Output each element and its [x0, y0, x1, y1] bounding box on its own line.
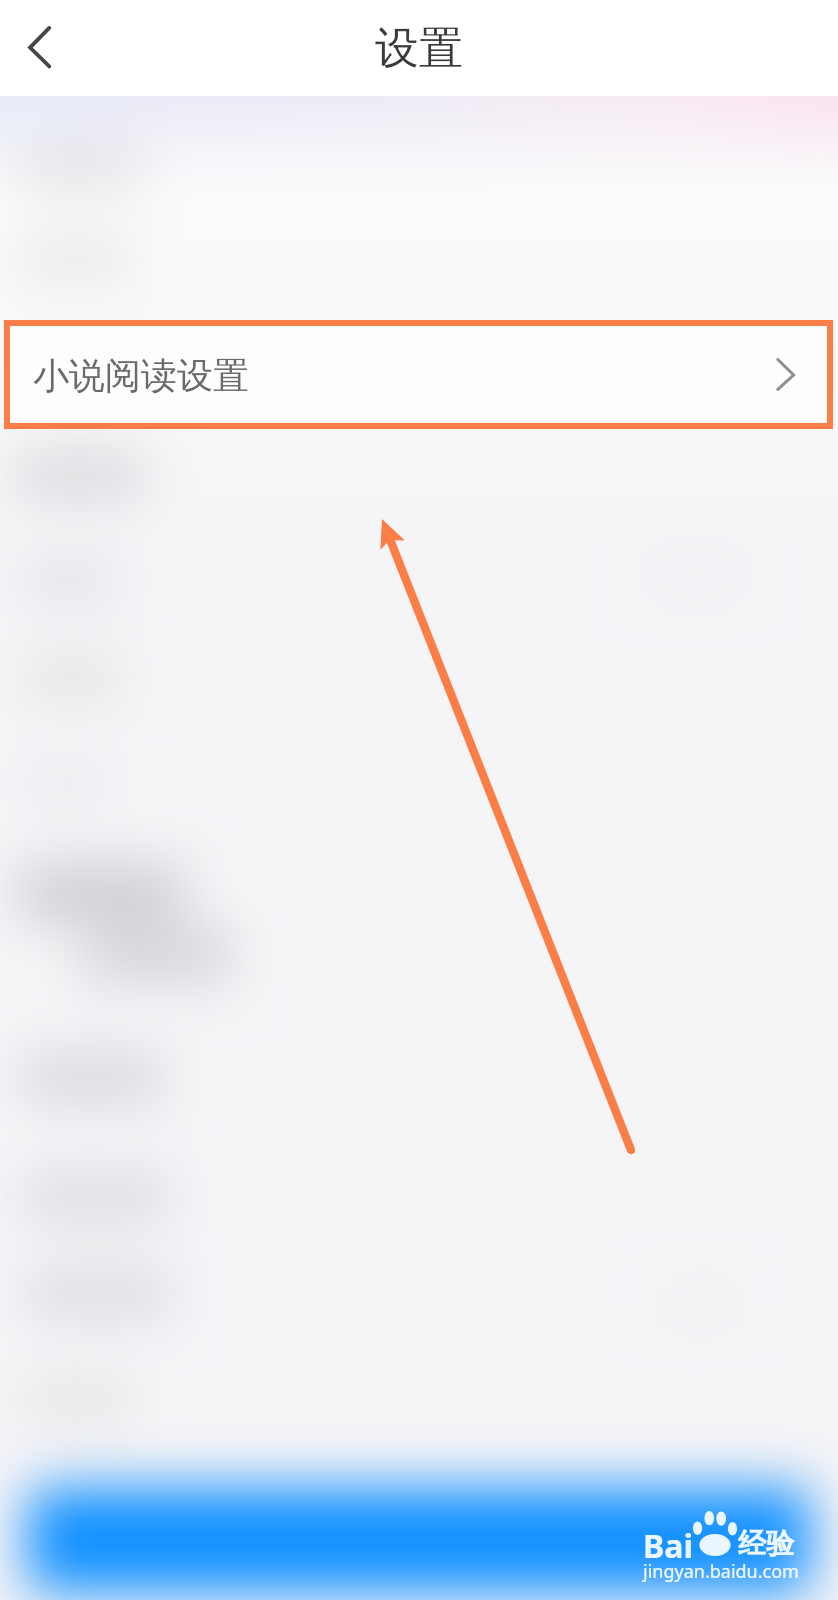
staticText: 经验	[738, 1526, 794, 1561]
staticText: Bai	[643, 1524, 694, 1568]
staticText: 小说阅读设置	[33, 353, 249, 398]
staticText: jingyan.baidu.com	[643, 1559, 799, 1584]
button[interactable]: Back	[6, 6, 88, 88]
button[interactable]: 小说阅读设置	[10, 326, 827, 423]
staticText: 设置	[375, 21, 463, 76]
